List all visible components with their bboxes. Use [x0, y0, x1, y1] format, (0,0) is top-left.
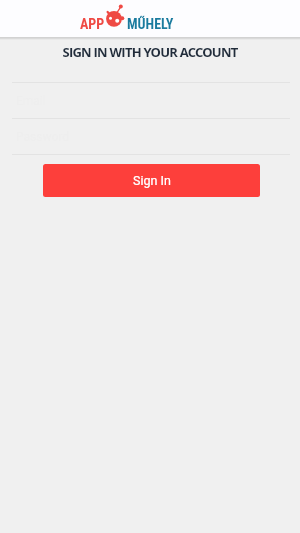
other: App Műhely logo	[0, 0, 300, 37]
button[interactable]: Sign In	[43, 164, 260, 197]
staticText: Sign In	[133, 173, 171, 188]
staticText: SIGN IN WITH YOUR ACCOUNT	[0, 43, 300, 61]
staticText: APP	[80, 16, 105, 32]
staticText: MŰHELY	[127, 16, 174, 32]
